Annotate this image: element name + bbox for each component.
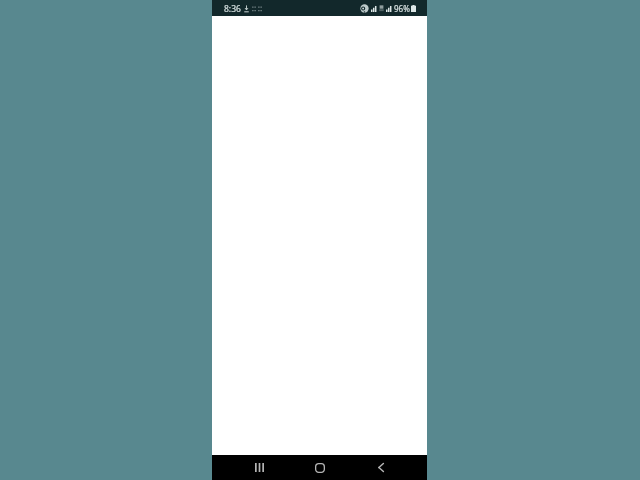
staticText: 96% (394, 3, 410, 14)
button[interactable]: Recents (239, 455, 279, 480)
staticText: 8:36 (224, 3, 241, 15)
button[interactable]: Home (300, 455, 340, 480)
button[interactable]: Back (361, 455, 401, 480)
